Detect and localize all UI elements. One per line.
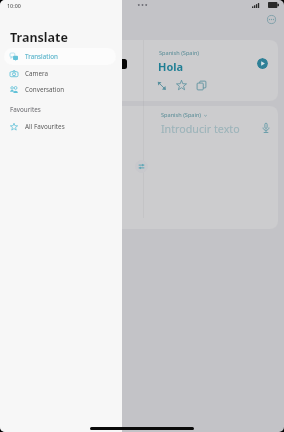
button[interactable]: Swap languages — [135, 160, 148, 173]
button[interactable]: Resize panes — [122, 59, 127, 69]
staticText: Hola — [158, 59, 184, 74]
button[interactable]: Favourite — [176, 80, 187, 91]
staticText: Translate — [10, 29, 68, 46]
button[interactable]: Voice input — [258, 118, 273, 138]
button[interactable]: Camera — [4, 65, 116, 82]
button[interactable]: Spanish (Spain) — [100, 40, 278, 101]
staticText: Favourites — [10, 105, 41, 114]
button[interactable]: All Favourites — [4, 118, 116, 135]
button[interactable]: Translation — [4, 48, 116, 65]
button[interactable]: Play — [257, 58, 268, 69]
staticText: Camera — [25, 69, 48, 78]
staticText: Translation — [25, 52, 58, 61]
staticText: Spanish (Spain) — [159, 49, 200, 57]
button[interactable]: Expand — [156, 80, 167, 91]
staticText: Conversation — [25, 85, 65, 94]
button[interactable]: More options — [264, 12, 278, 26]
button[interactable]: Copy — [196, 80, 207, 91]
staticText: 10:00 — [7, 2, 21, 9]
button[interactable]: Spanish (Spain) — [100, 106, 278, 229]
staticText: Spanish (Spain) — [161, 111, 202, 119]
staticText: All Favourites — [25, 122, 65, 131]
button[interactable]: Conversation — [4, 81, 116, 98]
staticText: Introducir texto — [161, 122, 240, 137]
